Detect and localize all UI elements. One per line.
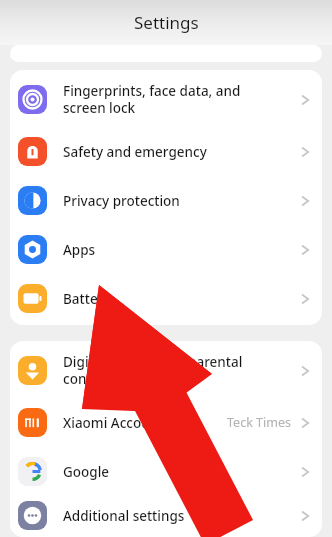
button[interactable]: Safety and emergency [10, 127, 322, 176]
button[interactable]: Fingerprints, face data, and screen lock [10, 72, 322, 127]
button[interactable]: Xiaomi Account [10, 398, 322, 447]
other: Fingerprints, face data, and screen lock [18, 85, 47, 114]
button[interactable]: Google [10, 447, 322, 496]
staticText: Teck Times [227, 414, 291, 431]
button[interactable]: Apps [10, 225, 322, 274]
other: Xiaomi Account [18, 408, 47, 437]
staticText: Xiaomi Account [63, 414, 164, 432]
other: Apps [18, 235, 47, 264]
button[interactable]: Battery [10, 274, 322, 323]
staticText: Google [63, 463, 110, 481]
other: Privacy protection [18, 186, 47, 215]
staticText: Privacy protection [63, 192, 180, 210]
staticText: Safety and emergency [63, 143, 207, 161]
button[interactable]: Privacy protection [10, 176, 322, 225]
staticText: Additional settings [63, 507, 185, 525]
other: Google [18, 457, 47, 486]
button[interactable]: Digital wellbeing & parental controls [10, 343, 322, 398]
other: Additional settings [18, 501, 47, 530]
other: Safety and emergency [18, 137, 47, 166]
button[interactable]: Additional settings [10, 496, 322, 535]
other: Battery [18, 284, 47, 313]
other: Digital wellbeing & parental controls [18, 356, 47, 385]
staticText: Battery [63, 290, 111, 308]
staticText: Settings [134, 11, 199, 34]
staticText: Apps [63, 241, 96, 259]
staticText: Fingerprints, face data, and screen lock [63, 82, 241, 117]
staticText: Digital wellbeing & parental controls [63, 353, 243, 388]
